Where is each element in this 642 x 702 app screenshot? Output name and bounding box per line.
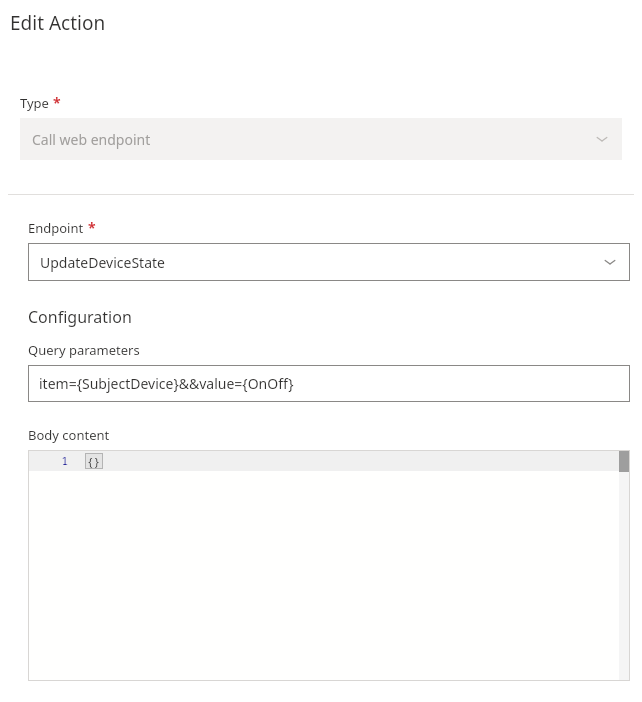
staticText: Configuration xyxy=(28,306,132,328)
staticText: 1 xyxy=(61,453,68,468)
staticText: Query parameters xyxy=(28,341,140,359)
staticText: Endpoint xyxy=(28,219,84,237)
staticText: * xyxy=(88,218,96,237)
staticText: item={SubjectDevice}&&value={OnOff} xyxy=(39,374,294,393)
button[interactable]: Body content editor xyxy=(28,450,630,681)
staticText: Edit Action xyxy=(10,10,106,36)
staticText: UpdateDeviceState xyxy=(40,253,602,272)
staticText: Call web endpoint xyxy=(32,130,594,149)
staticText: Type xyxy=(20,94,49,112)
staticText: Body content xyxy=(28,426,110,444)
button[interactable]: Type, Call web endpoint xyxy=(20,118,622,160)
staticText: {} xyxy=(87,454,101,469)
button[interactable]: Query parameters xyxy=(28,365,630,402)
button[interactable]: Endpoint, UpdateDeviceState xyxy=(28,243,630,281)
staticText: * xyxy=(53,93,61,112)
